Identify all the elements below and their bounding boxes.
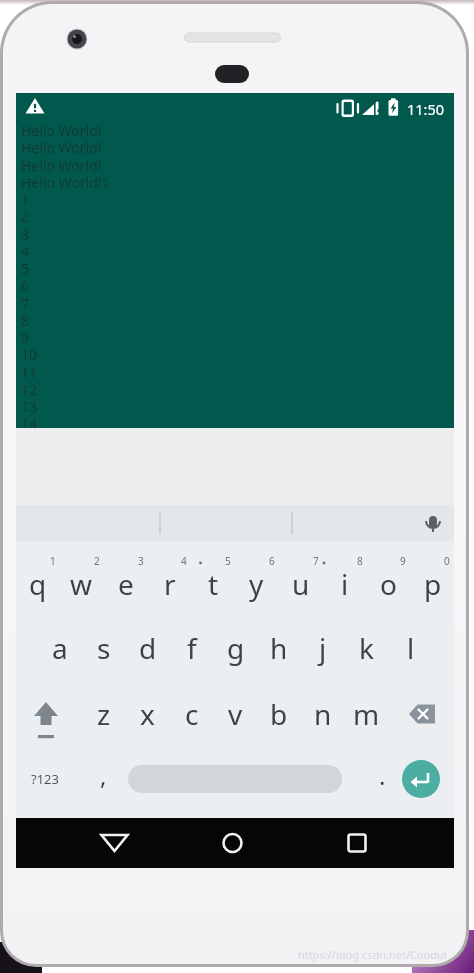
staticText: 12 (21, 380, 38, 399)
staticText: 7 (313, 554, 319, 568)
staticText: o (380, 565, 397, 603)
button[interactable]: 5 (220, 553, 236, 569)
button[interactable]: r (148, 558, 191, 610)
button[interactable] (415, 505, 451, 541)
staticText: Hello World!1 (21, 173, 110, 192)
staticText: q (29, 565, 47, 603)
staticText: b (270, 695, 288, 733)
button[interactable]: 3 (133, 553, 149, 569)
staticText: Hello World! (21, 121, 102, 140)
staticText: g (227, 629, 245, 667)
button[interactable]: l (389, 622, 432, 674)
staticText: f (187, 629, 197, 667)
button[interactable] (92, 821, 137, 865)
button[interactable]: o (367, 558, 410, 610)
button[interactable]: m (345, 688, 388, 740)
button[interactable]: 4 (176, 553, 192, 569)
staticText: t (208, 565, 219, 603)
button[interactable] (125, 753, 344, 805)
button[interactable]: h (257, 622, 300, 674)
button[interactable]: f (170, 622, 213, 674)
staticText: i (341, 565, 349, 603)
button[interactable] (402, 688, 446, 738)
button[interactable]: n (301, 688, 344, 740)
staticText: 3 (138, 554, 144, 568)
staticText: 0 (444, 554, 450, 568)
button[interactable]: x (126, 688, 169, 740)
staticText: 14 (21, 414, 38, 428)
staticText: . (379, 759, 386, 792)
button[interactable]: q (16, 558, 59, 610)
button[interactable] (399, 757, 443, 801)
staticText: y (249, 565, 264, 603)
staticText: u (292, 565, 310, 603)
button[interactable]: u (279, 558, 322, 610)
staticText: ?123 (31, 770, 59, 788)
staticText: s (97, 629, 111, 667)
button[interactable]: . (361, 749, 404, 801)
button[interactable]: a (38, 622, 81, 674)
button[interactable]: t (192, 558, 235, 610)
staticText: h (270, 629, 288, 667)
staticText: v (228, 695, 243, 733)
button[interactable]: 9 (395, 553, 411, 569)
button[interactable]: 7 (308, 553, 324, 569)
button[interactable]: j (301, 622, 344, 674)
staticText: https://blog.csdn.net/Coodul (298, 947, 447, 962)
staticText: 6 (269, 554, 275, 568)
button[interactable]: z (82, 688, 125, 740)
staticText: m (353, 695, 380, 733)
button[interactable]: 0 (439, 553, 455, 569)
button[interactable] (334, 821, 379, 865)
staticText: 8 (21, 311, 30, 330)
button[interactable] (24, 688, 68, 738)
staticText: d (139, 629, 157, 667)
button[interactable]: c (170, 688, 213, 740)
staticText: 10 (21, 345, 38, 364)
staticText: 5 (21, 259, 30, 278)
staticText: 4 (21, 242, 30, 261)
button[interactable]: b (257, 688, 300, 740)
staticText: e (118, 565, 134, 603)
staticText: r (164, 565, 176, 603)
staticText: x (140, 695, 155, 733)
staticText: Hello World! (21, 138, 102, 157)
staticText: 13 (21, 397, 38, 416)
staticText: 4 (181, 554, 187, 568)
button[interactable]: ?123 (16, 755, 74, 803)
button[interactable]: , (82, 749, 125, 801)
button[interactable]: v (214, 688, 257, 740)
staticText: w (70, 565, 93, 603)
button[interactable]: i (323, 558, 366, 610)
button[interactable]: e (104, 558, 147, 610)
button[interactable]: p (411, 558, 454, 610)
button[interactable]: w (60, 558, 103, 610)
staticText: 9 (21, 328, 30, 347)
staticText: 9 (400, 554, 406, 568)
staticText: p (424, 565, 442, 603)
staticText: 5 (225, 554, 231, 568)
button[interactable]: g (214, 622, 257, 674)
staticText: a (52, 629, 68, 667)
button[interactable]: s (82, 622, 125, 674)
staticText: 11:50 (407, 99, 445, 119)
button[interactable]: y (235, 558, 278, 610)
button[interactable]: d (126, 622, 169, 674)
staticText: , (100, 759, 107, 792)
button[interactable]: 1 (45, 553, 61, 569)
staticText: 6 (21, 276, 30, 295)
button[interactable]: 8 (352, 553, 368, 569)
staticText: k (359, 629, 374, 667)
button[interactable]: 2 (89, 553, 105, 569)
staticText: 2 (94, 554, 100, 568)
staticText: 7 (21, 294, 30, 313)
staticText: 8 (357, 554, 363, 568)
staticText: 1 (21, 190, 30, 209)
staticText: c (185, 695, 199, 733)
button[interactable] (212, 821, 257, 865)
staticText: 11 (21, 363, 38, 382)
staticText: 1 (50, 554, 56, 568)
staticText: Hello World! (21, 156, 102, 175)
button[interactable]: k (345, 622, 388, 674)
button[interactable]: 6 (264, 553, 280, 569)
